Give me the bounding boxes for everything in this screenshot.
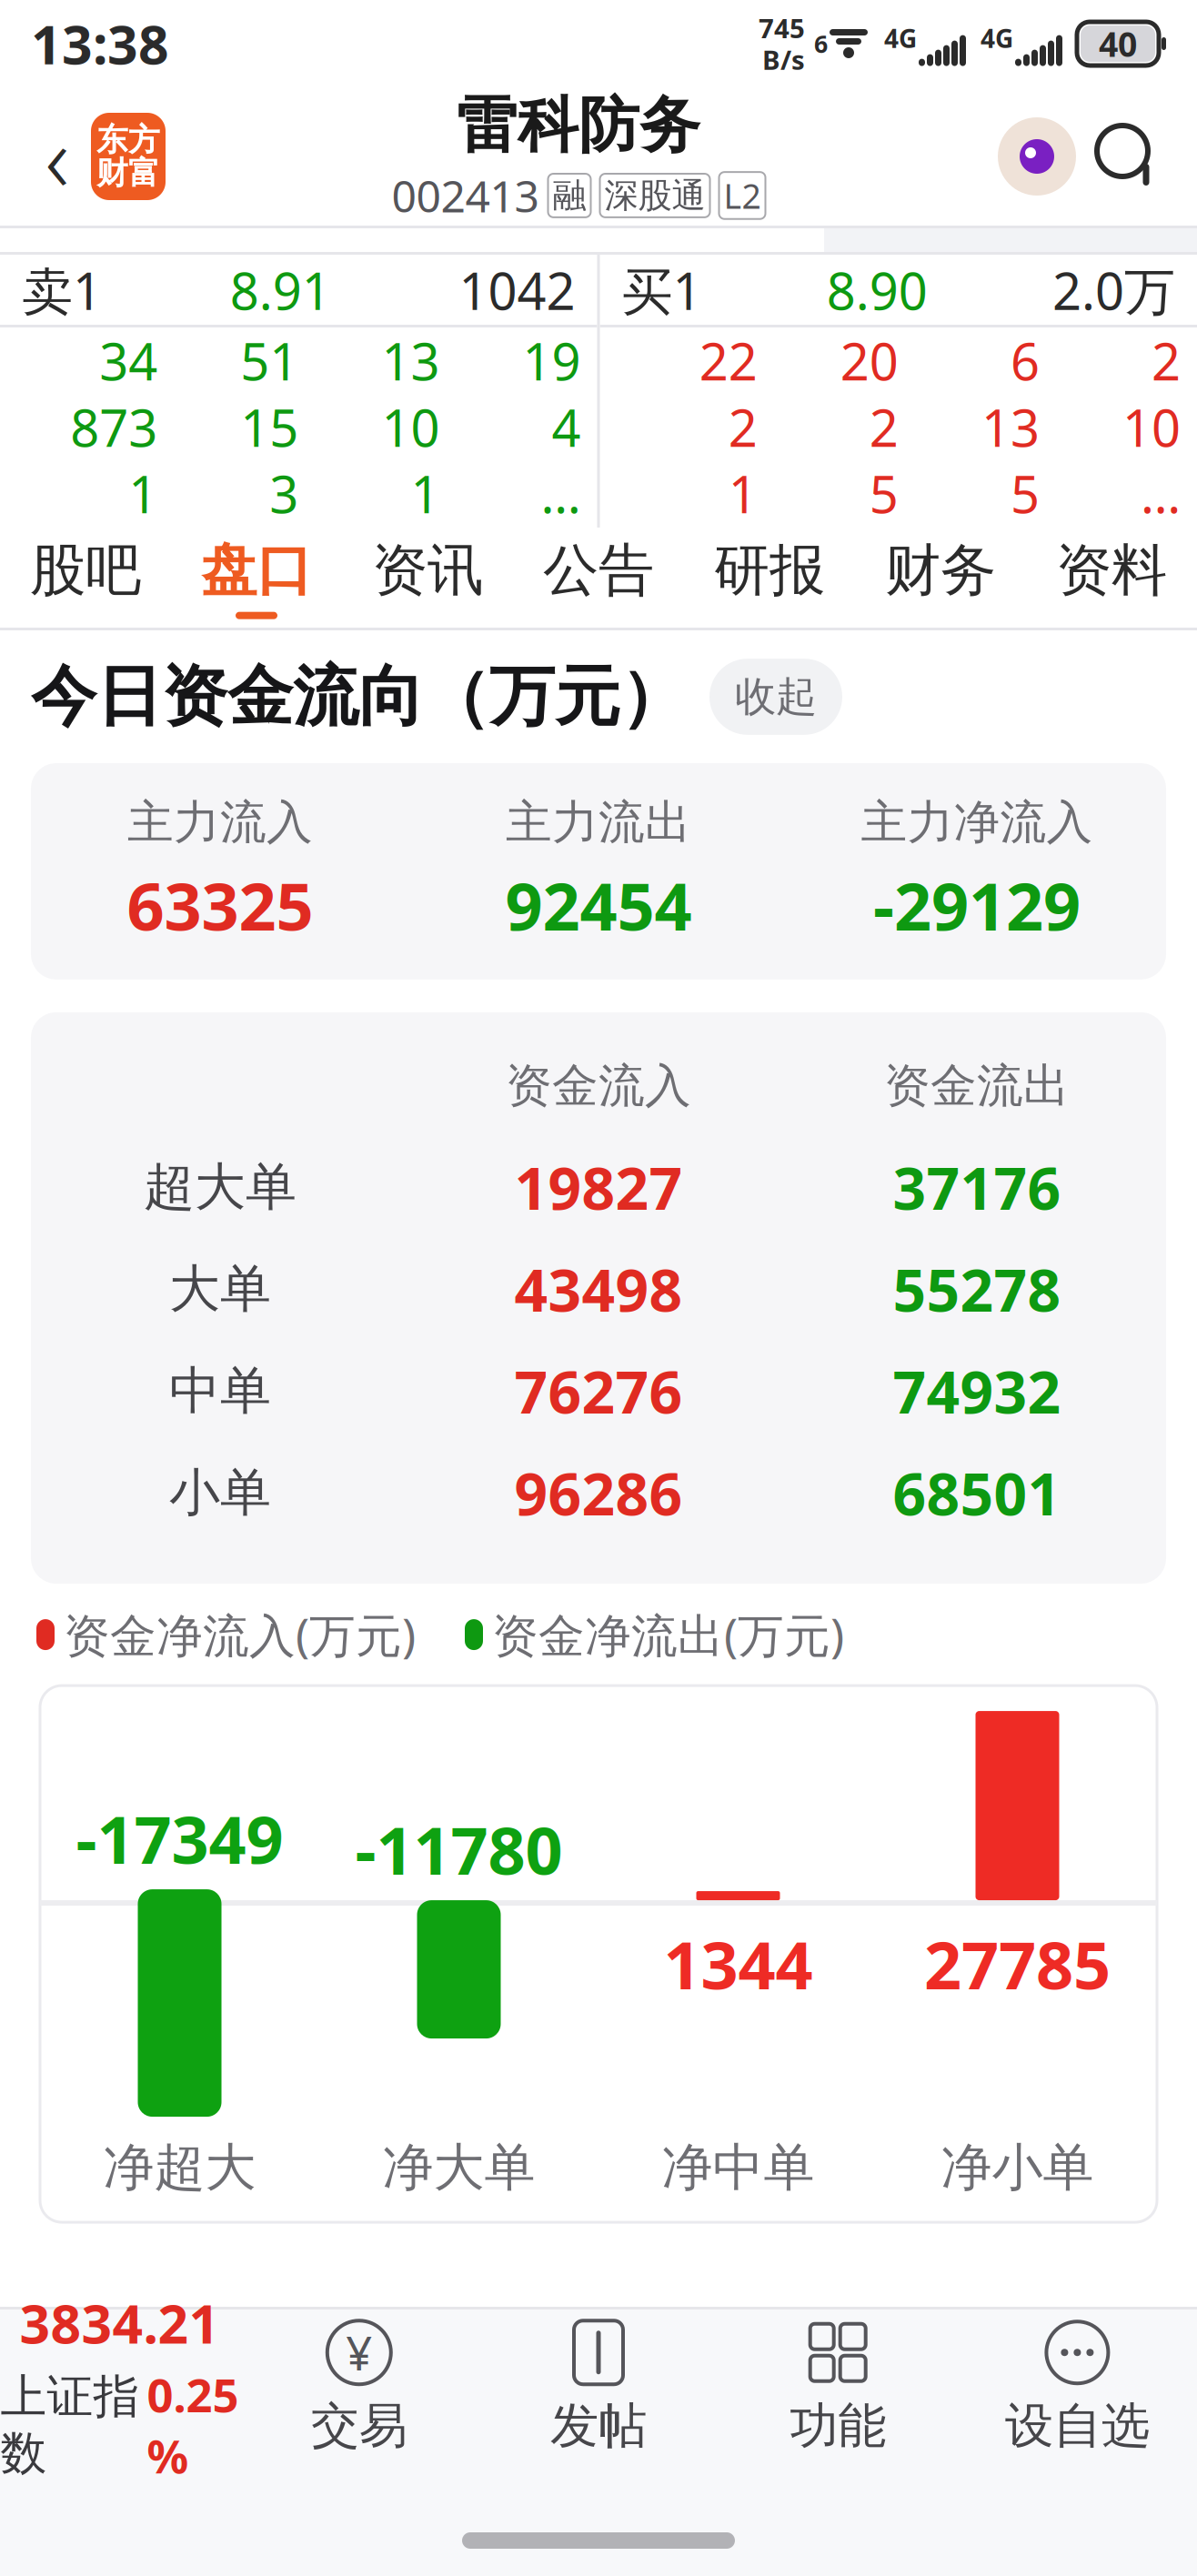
staticText: 大单	[169, 1258, 271, 1320]
staticText: 东方	[96, 120, 160, 159]
staticText: 股吧	[30, 536, 141, 605]
button[interactable]: 东方财富	[91, 113, 166, 200]
staticText: 研报	[714, 536, 825, 605]
staticText: 2	[1152, 327, 1181, 394]
staticText: 6	[1010, 327, 1040, 394]
staticText: …	[1141, 460, 1181, 527]
staticText: 745	[759, 10, 805, 45]
staticText: 中单	[169, 1360, 271, 1422]
staticText: 超大单	[144, 1156, 297, 1218]
button[interactable]: 资料	[1026, 528, 1197, 628]
staticText: L2	[724, 173, 761, 218]
staticText: -11780	[355, 1806, 563, 1893]
button[interactable]: Back	[24, 111, 91, 202]
staticText: 5	[869, 460, 898, 527]
button[interactable]: 3834.21	[0, 2309, 239, 2464]
button[interactable]: 公告	[513, 528, 684, 628]
staticText: 27785	[924, 1920, 1111, 2007]
staticText: 资金流出	[884, 1058, 1070, 1114]
staticText: 6	[814, 28, 828, 60]
staticText: 盘口	[201, 536, 312, 605]
staticText: 上证指数	[1, 2368, 140, 2482]
staticText: 雷科防务	[457, 88, 700, 163]
staticText: 主力净流入	[861, 794, 1093, 851]
staticText: 43498	[514, 1250, 683, 1328]
staticText: 55278	[893, 1250, 1061, 1328]
staticText: 4G	[981, 21, 1013, 55]
staticText: 1042	[459, 256, 575, 324]
button[interactable]: Search	[1082, 111, 1173, 202]
staticText: 3834.21	[20, 2287, 220, 2358]
staticText: B/s	[762, 42, 805, 77]
staticText: 资金净流入(万元)	[64, 1604, 416, 1665]
staticText: 13	[981, 393, 1040, 461]
staticText: 15	[240, 393, 299, 461]
button[interactable]: 盘口	[171, 528, 342, 628]
button[interactable]: 收起	[709, 659, 842, 735]
staticText: 1	[411, 460, 440, 527]
staticText: 10	[381, 393, 440, 461]
staticText: 净超大	[103, 2136, 256, 2199]
staticText: 2	[869, 393, 898, 461]
staticText: 设自选	[1005, 2396, 1150, 2456]
staticText: 净中单	[662, 2136, 815, 2199]
button[interactable]: 资讯	[342, 528, 513, 628]
staticText: 资讯	[372, 536, 483, 605]
button[interactable]: 股吧	[0, 528, 171, 628]
staticText: 13:38	[31, 8, 169, 79]
staticText: 8.91	[230, 256, 331, 324]
button[interactable]: 发帖	[479, 2309, 718, 2464]
staticText: 小单	[169, 1461, 271, 1524]
staticText: 3	[269, 460, 299, 527]
staticText: 2	[728, 393, 757, 461]
staticText: 资金净流出(万元)	[492, 1604, 844, 1665]
staticText: 19827	[514, 1148, 683, 1226]
staticText: 收起	[735, 671, 817, 722]
button[interactable]: 财务	[855, 528, 1026, 628]
staticText: 发帖	[550, 2396, 647, 2456]
staticText: 96286	[514, 1454, 683, 1531]
staticText: 1	[128, 460, 157, 527]
staticText: 功能	[790, 2396, 886, 2456]
staticText: 92454	[505, 862, 692, 949]
staticText: 净大单	[382, 2136, 535, 2199]
staticText: 买1	[622, 256, 702, 324]
staticText: 34	[99, 327, 157, 394]
button[interactable]: AI 助手	[991, 111, 1082, 202]
staticText: 8.90	[827, 256, 928, 324]
staticText: -29129	[873, 862, 1081, 949]
staticText: 13	[381, 327, 440, 394]
staticText: 0.25%	[147, 2364, 239, 2486]
staticText: 1	[728, 460, 757, 527]
staticText: 公告	[543, 536, 654, 605]
staticText: 主力流出	[506, 794, 691, 851]
staticText: ‹	[45, 95, 70, 218]
staticText: 76276	[514, 1352, 683, 1430]
staticText: 22	[699, 327, 757, 394]
staticText: 20	[840, 327, 898, 394]
staticText: 63325	[127, 862, 313, 949]
button[interactable]: ¥	[239, 2309, 479, 2464]
staticText: 2.0万	[1052, 256, 1175, 324]
staticText: …	[541, 460, 581, 527]
staticText: 1344	[664, 1920, 813, 2007]
staticText: 74932	[893, 1352, 1061, 1430]
staticText: 主力流入	[127, 794, 313, 851]
staticText: 37176	[893, 1148, 1061, 1226]
button[interactable]: 设自选	[958, 2309, 1197, 2464]
button[interactable]: 研报	[684, 528, 855, 628]
button[interactable]: 功能	[718, 2309, 958, 2464]
staticText: 净小单	[941, 2136, 1094, 2199]
staticText: 财富	[96, 154, 160, 192]
staticText: 4	[552, 393, 581, 461]
staticText: 19	[523, 327, 581, 394]
staticText: 财务	[885, 536, 996, 605]
staticText: 深股通	[604, 175, 705, 216]
staticText: 资料	[1056, 536, 1167, 605]
staticText: ¥	[346, 2322, 372, 2383]
staticText: -17349	[76, 1795, 283, 1882]
staticText: 002413	[392, 167, 539, 224]
staticText: 10	[1122, 393, 1181, 461]
staticText: 卖1	[22, 256, 102, 324]
